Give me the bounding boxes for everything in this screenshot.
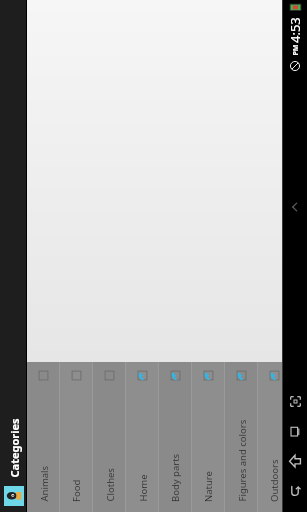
- other: Recent apps: [288, 424, 303, 439]
- button[interactable]: Back: [283, 446, 307, 476]
- button[interactable]: Categories: [0, 0, 27, 512]
- button[interactable]: Body parts: [159, 362, 192, 512]
- button[interactable]: Food: [60, 362, 93, 512]
- staticText: Outdoors: [268, 459, 281, 502]
- other: Back: [287, 453, 303, 469]
- other: Home: [287, 483, 303, 499]
- button[interactable]: Recent apps: [283, 416, 307, 446]
- staticText: PM: [290, 44, 300, 55]
- button[interactable]: Animals: [27, 362, 60, 512]
- staticText: 4:53: [286, 17, 304, 43]
- button[interactable]: Home: [283, 476, 307, 506]
- staticText: Nature: [202, 471, 215, 502]
- staticText: Figures and colors: [235, 419, 248, 501]
- staticText: Clothes: [103, 467, 116, 501]
- staticText: Categories: [6, 417, 21, 477]
- staticText: Home: [136, 473, 149, 501]
- staticText: Body parts: [169, 453, 182, 502]
- button[interactable]: Screenshot: [283, 386, 307, 416]
- button[interactable]: Figures and colors: [225, 362, 258, 512]
- staticText: Animals: [37, 465, 50, 501]
- staticText: Food: [70, 479, 83, 502]
- button[interactable]: Open navigation: [286, 198, 304, 216]
- other: Screenshot: [288, 394, 303, 409]
- button[interactable]: Clothes: [93, 362, 126, 512]
- button[interactable]: Home: [126, 362, 159, 512]
- button[interactable]: Outdoors: [258, 362, 291, 512]
- button[interactable]: Nature: [192, 362, 225, 512]
